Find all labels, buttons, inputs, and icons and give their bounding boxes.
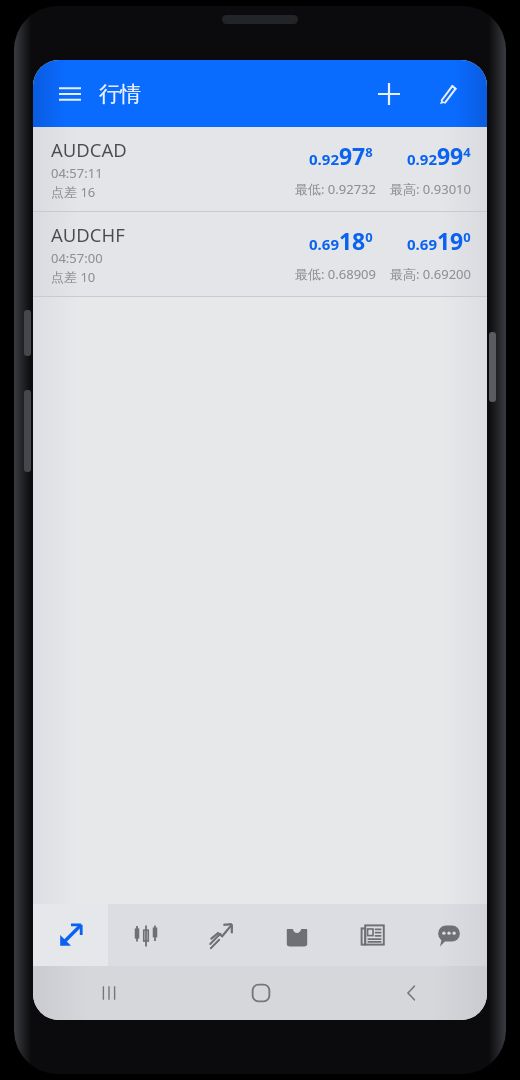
- staticText: 0.92978: [309, 140, 373, 171]
- button[interactable]: News: [335, 904, 411, 966]
- staticText: 行情: [99, 81, 141, 107]
- button[interactable]: Quotes: [33, 904, 108, 966]
- staticText: 0.92994: [407, 140, 471, 171]
- staticText: 点差 10: [51, 268, 96, 286]
- button[interactable]: Recents: [33, 966, 185, 1020]
- button[interactable]: AUDCHF: [33, 212, 487, 296]
- button[interactable]: Add symbol: [367, 72, 411, 116]
- staticText: 04:57:00: [51, 249, 103, 267]
- staticText: 最高: 0.93010: [390, 180, 471, 198]
- button[interactable]: History: [259, 904, 335, 966]
- staticText: AUDCHF: [51, 222, 125, 247]
- staticText: 最低: 0.92732: [295, 180, 376, 198]
- staticText: 04:57:11: [51, 164, 103, 182]
- staticText: AUDCAD: [51, 137, 127, 162]
- button[interactable]: Messages: [411, 904, 487, 966]
- staticText: 点差 16: [51, 183, 96, 201]
- button[interactable]: Back: [336, 966, 487, 1020]
- button[interactable]: Menu: [51, 75, 89, 113]
- button[interactable]: Home: [185, 966, 336, 1020]
- button[interactable]: Trade: [183, 904, 259, 966]
- staticText: 最高: 0.69200: [390, 265, 471, 283]
- staticText: 最低: 0.68909: [295, 265, 376, 283]
- button[interactable]: Charts: [108, 904, 183, 966]
- button[interactable]: AUDCAD: [33, 127, 487, 211]
- staticText: 0.69180: [309, 225, 373, 256]
- staticText: 0.69190: [407, 225, 471, 256]
- button[interactable]: Edit: [425, 72, 469, 116]
